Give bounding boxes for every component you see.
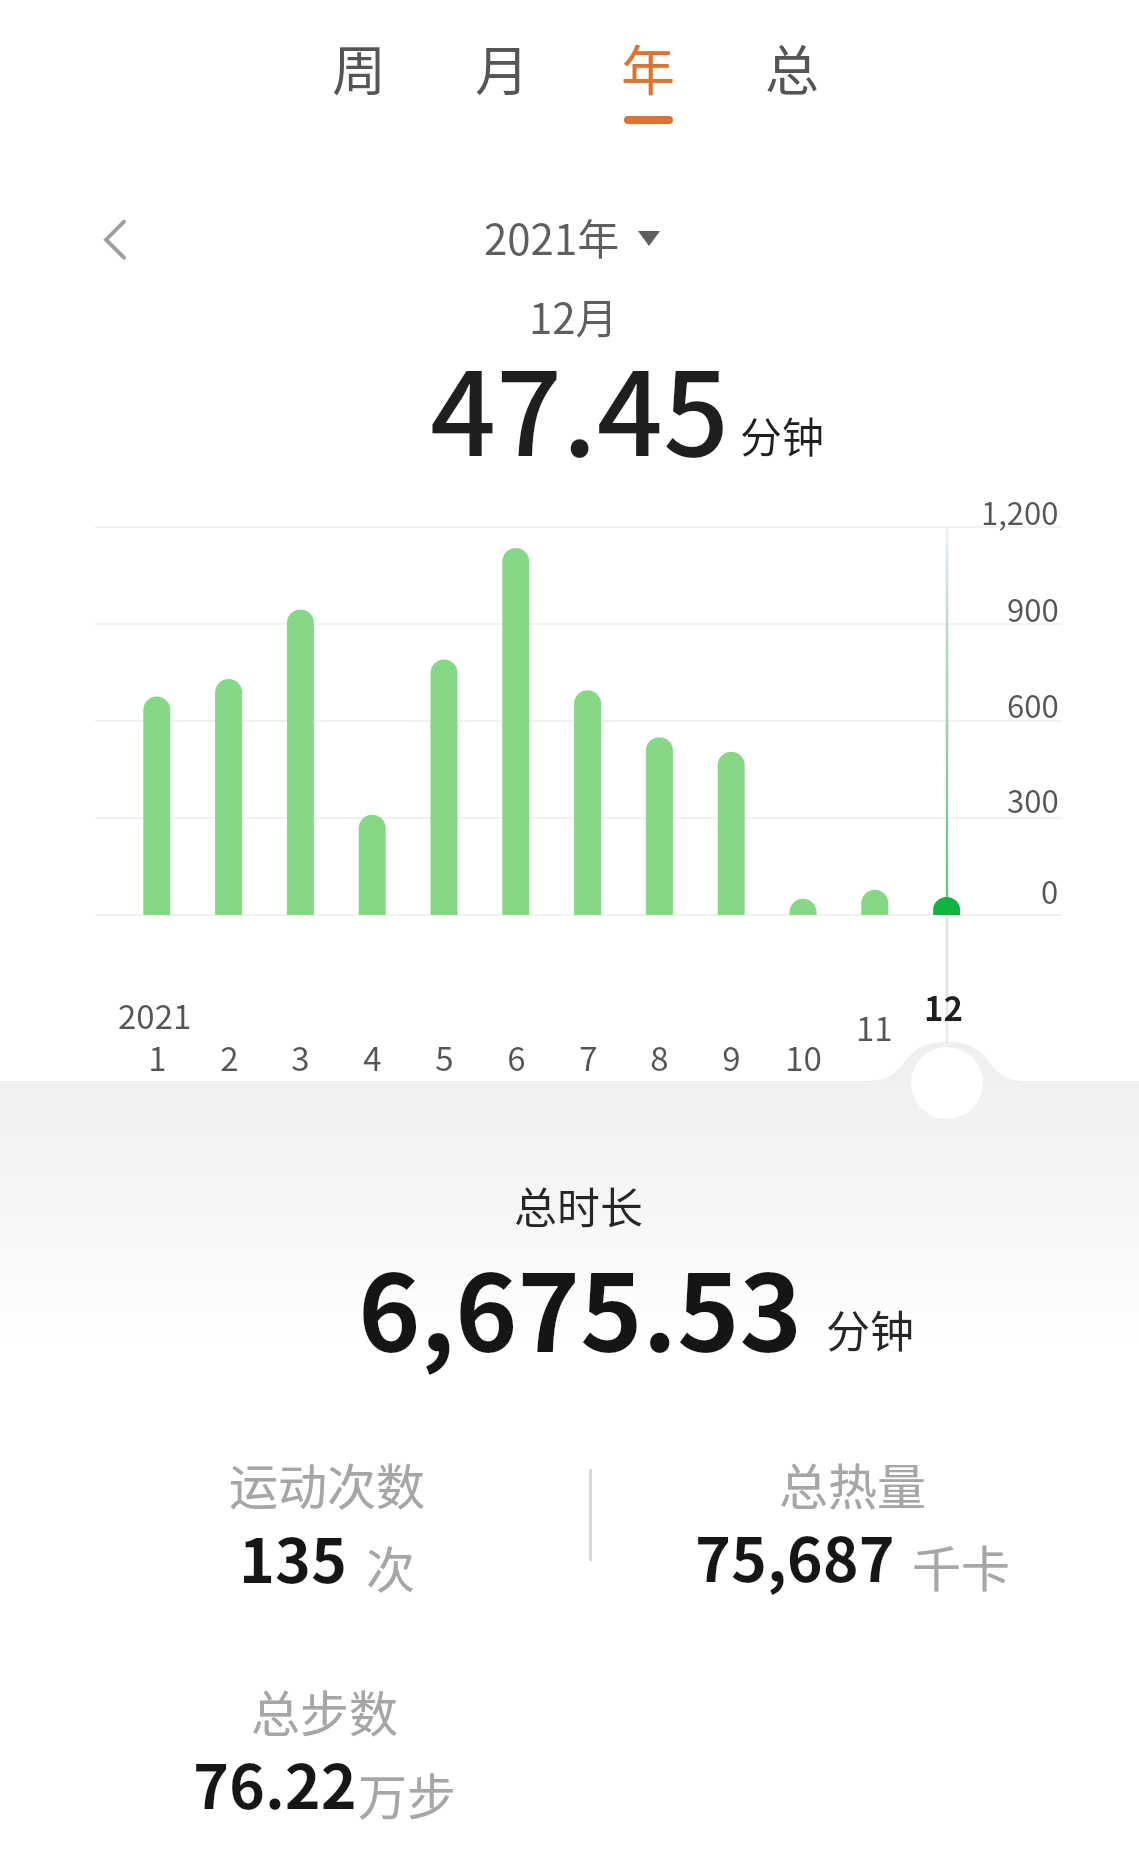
staticText: 总 <box>765 28 819 106</box>
staticText: 5 <box>435 1033 454 1081</box>
staticText: 年 <box>621 28 675 106</box>
staticText: 2021年 <box>484 206 620 267</box>
staticText: 600 <box>1007 682 1059 727</box>
staticText: 300 <box>1007 777 1059 822</box>
staticText: 分钟 <box>740 404 825 465</box>
button[interactable] <box>77 1430 577 1604</box>
staticText: 1,200 <box>981 489 1059 534</box>
staticText: 运动次数 <box>229 1448 426 1519</box>
staticText: 6 <box>507 1033 526 1081</box>
staticText: 900 <box>1007 586 1059 631</box>
staticText: 周 <box>332 28 386 106</box>
staticText: 10 <box>785 1033 822 1081</box>
staticText: 月 <box>475 28 529 106</box>
staticText: 0 <box>1041 868 1059 913</box>
staticText: 2021 <box>118 991 192 1039</box>
staticText: 万步 <box>358 1758 457 1829</box>
button[interactable]: 2021年 <box>484 206 660 267</box>
button[interactable]: 月 <box>444 28 560 132</box>
staticText: 次 <box>366 1531 416 1602</box>
staticText: 6,675.53 <box>358 1229 803 1382</box>
staticText: 总时长 <box>514 1174 643 1236</box>
staticText: 75,687 <box>695 1511 895 1599</box>
staticText: 47.45 <box>430 321 730 489</box>
staticText: 4 <box>363 1033 382 1081</box>
staticText: 11 <box>856 1003 893 1051</box>
button[interactable]: 年 <box>590 28 706 132</box>
staticText: 12月 <box>529 285 618 346</box>
button[interactable] <box>603 1430 1103 1603</box>
button[interactable] <box>75 1657 575 1830</box>
staticText: 分钟 <box>826 1297 914 1361</box>
button[interactable]: 总 <box>734 28 850 132</box>
staticText: 千卡 <box>912 1530 1011 1601</box>
staticText: 2 <box>220 1033 239 1081</box>
staticText: 12 <box>924 983 963 1031</box>
staticText: 76.22 <box>193 1738 357 1826</box>
button[interactable]: Expand summary <box>909 1045 985 1121</box>
staticText: 8 <box>650 1033 669 1081</box>
staticText: 9 <box>722 1033 741 1081</box>
button[interactable]: Back <box>62 196 150 284</box>
staticText: 7 <box>579 1033 598 1081</box>
staticText: 1 <box>148 1033 167 1081</box>
staticText: 总热量 <box>779 1448 927 1519</box>
staticText: 135 <box>239 1512 347 1600</box>
staticText: 3 <box>291 1033 310 1081</box>
staticText: 总步数 <box>251 1675 399 1746</box>
button[interactable]: 周 <box>301 28 417 132</box>
